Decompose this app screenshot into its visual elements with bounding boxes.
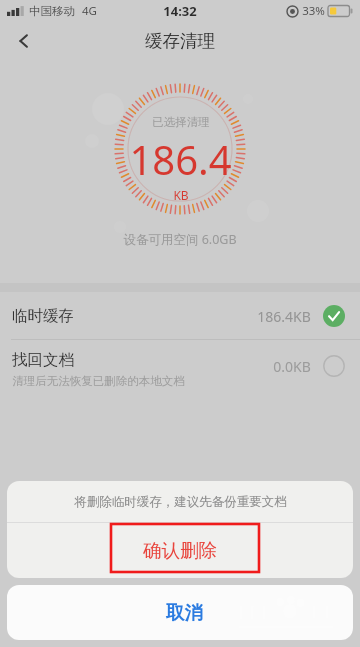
staticText: 清理后无法恢复已删除的本地文档 xyxy=(12,374,185,388)
staticText: 设备可用空间 6.0GB xyxy=(123,231,237,248)
staticText: 缓存清理 xyxy=(145,30,215,52)
staticText: 将删除临时缓存，建议先备份重要文档 xyxy=(74,494,287,510)
staticText: 临时缓存 xyxy=(12,306,74,326)
button[interactable]: 返回 xyxy=(4,22,44,59)
staticText: 取消 xyxy=(166,601,203,624)
staticText: 186.4 xyxy=(129,132,232,186)
staticText: 186.4KB xyxy=(257,307,311,326)
staticText: 0.0KB xyxy=(273,357,311,376)
button[interactable]: 找回文档 xyxy=(0,340,360,398)
staticText: 已选择清理 xyxy=(152,115,210,129)
staticText: 14:32 xyxy=(163,2,197,20)
button[interactable]: 取消 xyxy=(7,585,353,640)
staticText: 找回文档 xyxy=(12,350,74,370)
button[interactable]: 确认删除 xyxy=(7,523,353,578)
staticText: KB xyxy=(173,187,189,203)
button[interactable]: 临时缓存 xyxy=(0,292,360,339)
staticText: 33% xyxy=(302,3,325,19)
staticText: 4G xyxy=(82,3,97,19)
staticText: 中国移动 xyxy=(29,4,75,18)
staticText: 确认删除 xyxy=(143,539,217,562)
